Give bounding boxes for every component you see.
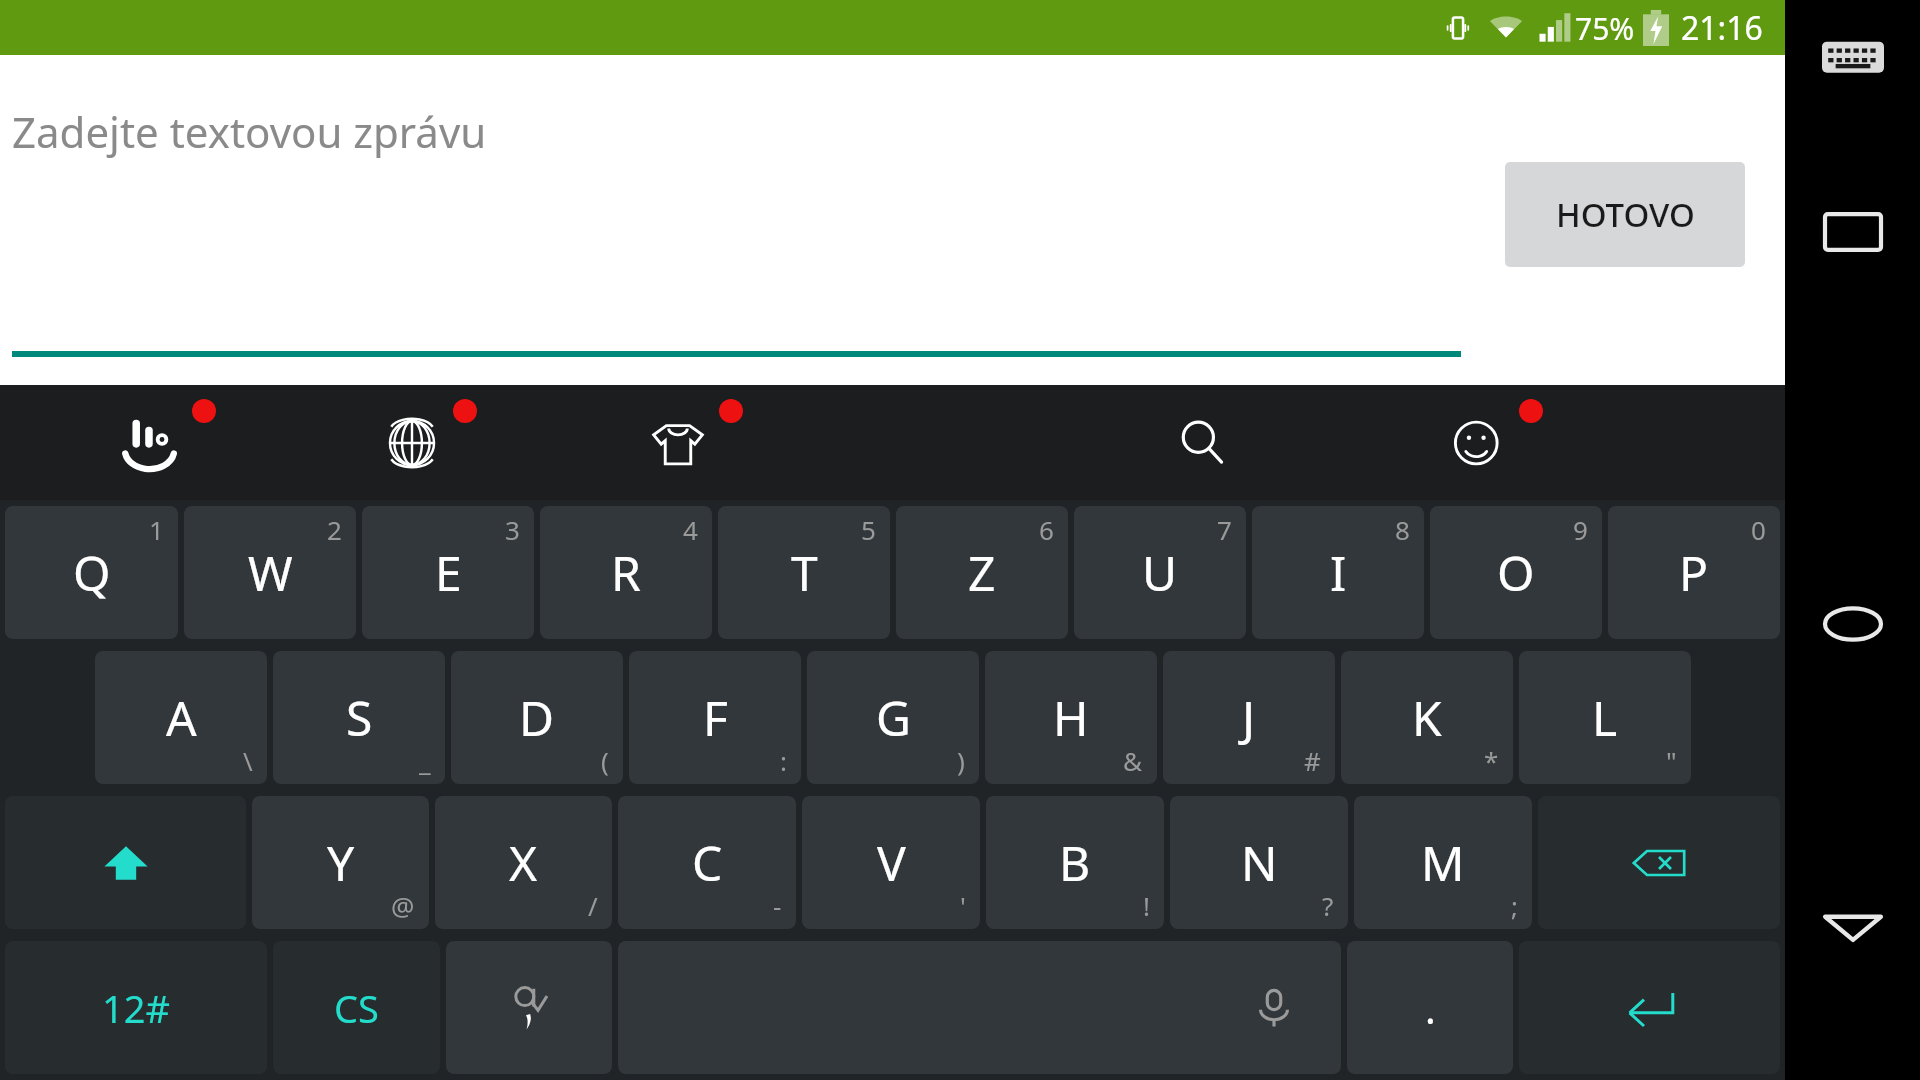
button[interactable]: R [540, 506, 712, 639]
staticText: CS [334, 982, 379, 1034]
staticText: . [1425, 981, 1436, 1035]
staticText: 5 [861, 512, 876, 547]
button[interactable]: W [184, 506, 356, 639]
button[interactable]: F [629, 651, 801, 784]
staticText: 2 [327, 512, 342, 547]
button[interactable]: O [1430, 506, 1602, 639]
button[interactable]: . [1347, 941, 1513, 1074]
button[interactable]: Y [252, 796, 429, 929]
button[interactable]: Accent [446, 941, 612, 1074]
button[interactable]: Theme [647, 385, 757, 500]
staticText: ( [601, 743, 609, 778]
button[interactable]: K [1341, 651, 1513, 784]
button[interactable]: Home [1807, 578, 1899, 670]
staticText: K [1412, 685, 1442, 750]
staticText: # [1304, 743, 1321, 778]
staticText: 4 [683, 512, 698, 547]
staticText: HOTOVO [1556, 192, 1695, 237]
staticText: 1 [149, 512, 164, 547]
staticText: * [1484, 743, 1499, 778]
staticText: W [248, 540, 293, 605]
staticText: ! [1143, 888, 1150, 923]
button[interactable]: U [1074, 506, 1246, 639]
staticText: 6 [1039, 512, 1054, 547]
staticText: 8 [1395, 512, 1410, 547]
staticText: Q [73, 540, 111, 605]
staticText: I [1330, 540, 1347, 605]
button[interactable]: X [435, 796, 612, 929]
button[interactable]: S [273, 651, 445, 784]
button[interactable]: E [362, 506, 534, 639]
button[interactable]: I [1252, 506, 1424, 639]
button[interactable]: Emoji [1447, 385, 1557, 500]
staticText: 0 [1751, 512, 1766, 547]
button[interactable]: Space [618, 941, 1341, 1074]
button[interactable]: Search [1172, 385, 1282, 500]
staticText: V [877, 830, 906, 895]
staticText: ; [1511, 888, 1518, 923]
button[interactable]: L [1519, 651, 1691, 784]
staticText: H [1053, 685, 1089, 750]
staticText: A [166, 685, 197, 750]
staticText: C [692, 830, 723, 895]
staticText: X [509, 830, 538, 895]
button[interactable]: A [95, 651, 267, 784]
staticText: ) [957, 743, 965, 778]
button[interactable]: Language [381, 385, 491, 500]
staticText: ' [960, 888, 966, 923]
staticText: E [435, 540, 462, 605]
button[interactable]: CS [273, 941, 440, 1074]
button[interactable]: Keyboard [1808, 14, 1898, 104]
button[interactable]: Keyboard settings [120, 385, 230, 500]
staticText: Y [327, 830, 355, 895]
staticText: U [1142, 540, 1178, 605]
button[interactable]: Q [5, 506, 178, 639]
button[interactable]: D [451, 651, 623, 784]
button[interactable]: Backspace [1538, 796, 1780, 929]
staticText: 3 [505, 512, 520, 547]
staticText: _ [419, 743, 431, 778]
staticText: Zadejte textovou zprávu [12, 103, 487, 160]
button[interactable]: Enter [1519, 941, 1780, 1074]
button[interactable]: T [718, 506, 890, 639]
button[interactable]: HOTOVO [1505, 162, 1745, 267]
staticText: / [588, 888, 598, 923]
staticText: - [773, 888, 782, 923]
button[interactable]: V [802, 796, 980, 929]
staticText: J [1242, 685, 1256, 750]
staticText: @ [391, 888, 415, 923]
staticText: 9 [1573, 512, 1588, 547]
staticText: & [1123, 743, 1143, 778]
button[interactable]: Recents [1807, 186, 1899, 278]
staticText: B [1059, 830, 1091, 895]
staticText: D [519, 685, 555, 750]
button[interactable]: J [1163, 651, 1335, 784]
staticText: : [780, 743, 787, 778]
button[interactable]: Back [1807, 880, 1899, 972]
button[interactable]: G [807, 651, 979, 784]
staticText: F [703, 685, 728, 750]
staticText: 75% [1575, 8, 1635, 49]
staticText: 21:16 [1681, 6, 1763, 50]
button[interactable]: B [986, 796, 1164, 929]
staticText: O [1497, 540, 1535, 605]
staticText: 7 [1217, 512, 1232, 547]
staticText: 12# [102, 982, 171, 1034]
staticText: P [1679, 540, 1709, 605]
button[interactable]: N [1170, 796, 1348, 929]
staticText: S [346, 685, 373, 750]
button[interactable]: M [1354, 796, 1532, 929]
staticText: ? [1322, 888, 1334, 923]
button[interactable]: C [618, 796, 796, 929]
button[interactable]: Z [896, 506, 1068, 639]
button[interactable]: Shift [5, 796, 246, 929]
button[interactable]: 12# [5, 941, 267, 1074]
staticText: G [876, 685, 911, 750]
staticText: T [791, 540, 818, 605]
button[interactable]: P [1608, 506, 1780, 639]
staticText: \ [243, 743, 253, 778]
staticText: N [1241, 830, 1278, 895]
button[interactable]: H [985, 651, 1157, 784]
staticText: M [1421, 830, 1465, 895]
staticText: R [611, 540, 641, 605]
